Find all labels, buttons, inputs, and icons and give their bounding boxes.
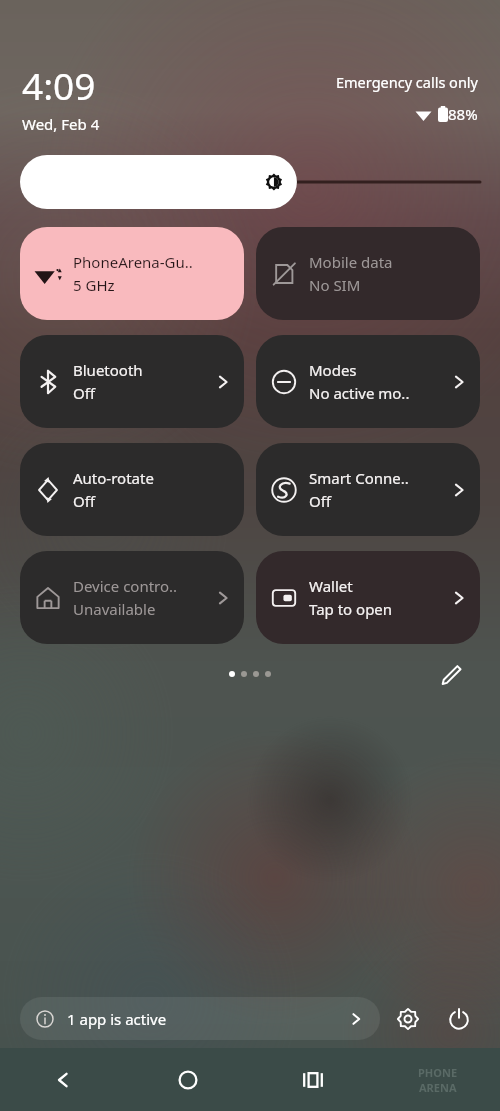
button[interactable]: Settings (380, 997, 436, 1040)
staticText: Device contro.. (73, 576, 178, 596)
staticText: Wallet (309, 576, 353, 596)
button[interactable]: Mobile data (256, 227, 480, 320)
button[interactable]: Back (0, 1048, 125, 1111)
staticText: No SIM (309, 275, 361, 295)
staticText: Modes (309, 360, 357, 380)
button[interactable]: Device contro.. (20, 551, 244, 644)
staticText: Wed, Feb 4 (22, 114, 100, 134)
staticText: 4:09 (22, 60, 96, 110)
staticText: Off (309, 491, 332, 511)
staticText: PHONE (418, 1065, 458, 1080)
button[interactable]: Auto-rotate (20, 443, 244, 536)
button[interactable]: Brightness (20, 155, 480, 209)
staticText: Bluetooth (73, 360, 143, 380)
staticText: Tap to open (309, 599, 393, 619)
button[interactable]: 1 app is active (20, 997, 380, 1040)
staticText: Auto-rotate (73, 468, 154, 488)
staticText: Mobile data (309, 252, 393, 272)
button[interactable]: PhoneArena-Gu.. (20, 227, 244, 320)
staticText: 1 app is active (67, 1009, 167, 1029)
button[interactable]: Wallet (256, 551, 480, 644)
button[interactable]: Edit tiles (438, 661, 464, 687)
staticText: Off (73, 383, 96, 403)
button[interactable]: Home (125, 1048, 250, 1111)
staticText: Off (73, 491, 96, 511)
staticText: Unavailable (73, 599, 156, 619)
button[interactable]: Smart Conne.. (256, 443, 480, 536)
staticText: ARENA (419, 1080, 457, 1095)
staticText: 5 GHz (73, 275, 115, 295)
button[interactable]: Recents (250, 1048, 375, 1111)
button[interactable]: Power (436, 997, 482, 1040)
staticText: Emergency calls only (336, 72, 478, 92)
staticText: No active mo.. (309, 383, 410, 403)
staticText: Smart Conne.. (309, 468, 409, 488)
button[interactable]: Bluetooth (20, 335, 244, 428)
staticText: 88% (448, 104, 478, 124)
staticText: PhoneArena-Gu.. (73, 252, 193, 272)
button[interactable]: Modes (256, 335, 480, 428)
